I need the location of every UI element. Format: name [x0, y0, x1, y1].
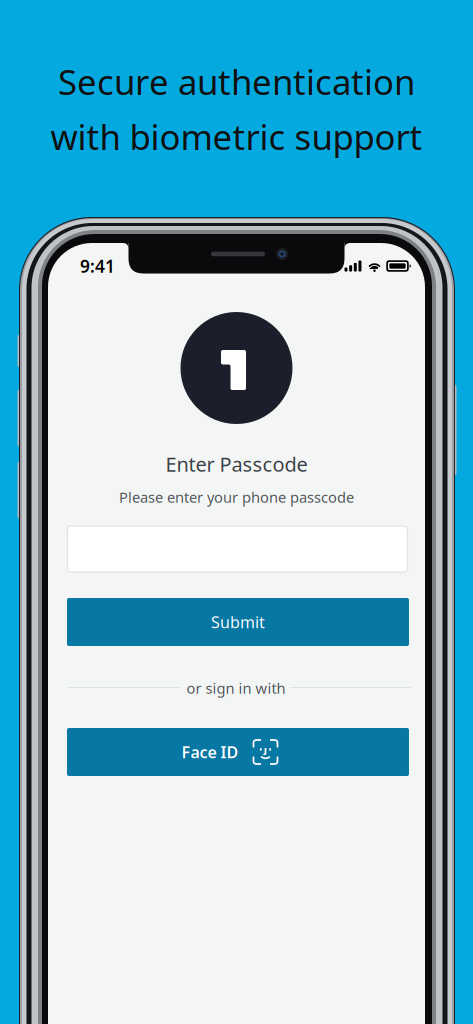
- button[interactable]: Face ID: [67, 728, 409, 776]
- staticText: Face ID: [181, 741, 238, 763]
- staticText: or sign in with: [186, 678, 285, 698]
- staticText: with biometric support: [50, 113, 422, 159]
- staticText: Submit: [211, 611, 265, 633]
- staticText: 9:41: [80, 254, 115, 277]
- button[interactable]: Submit: [67, 598, 409, 646]
- staticText: Enter Passcode: [165, 451, 307, 477]
- button[interactable]: Passcode: [67, 526, 407, 572]
- staticText: Secure authentication: [58, 58, 415, 104]
- staticText: Please enter your phone passcode: [119, 487, 354, 507]
